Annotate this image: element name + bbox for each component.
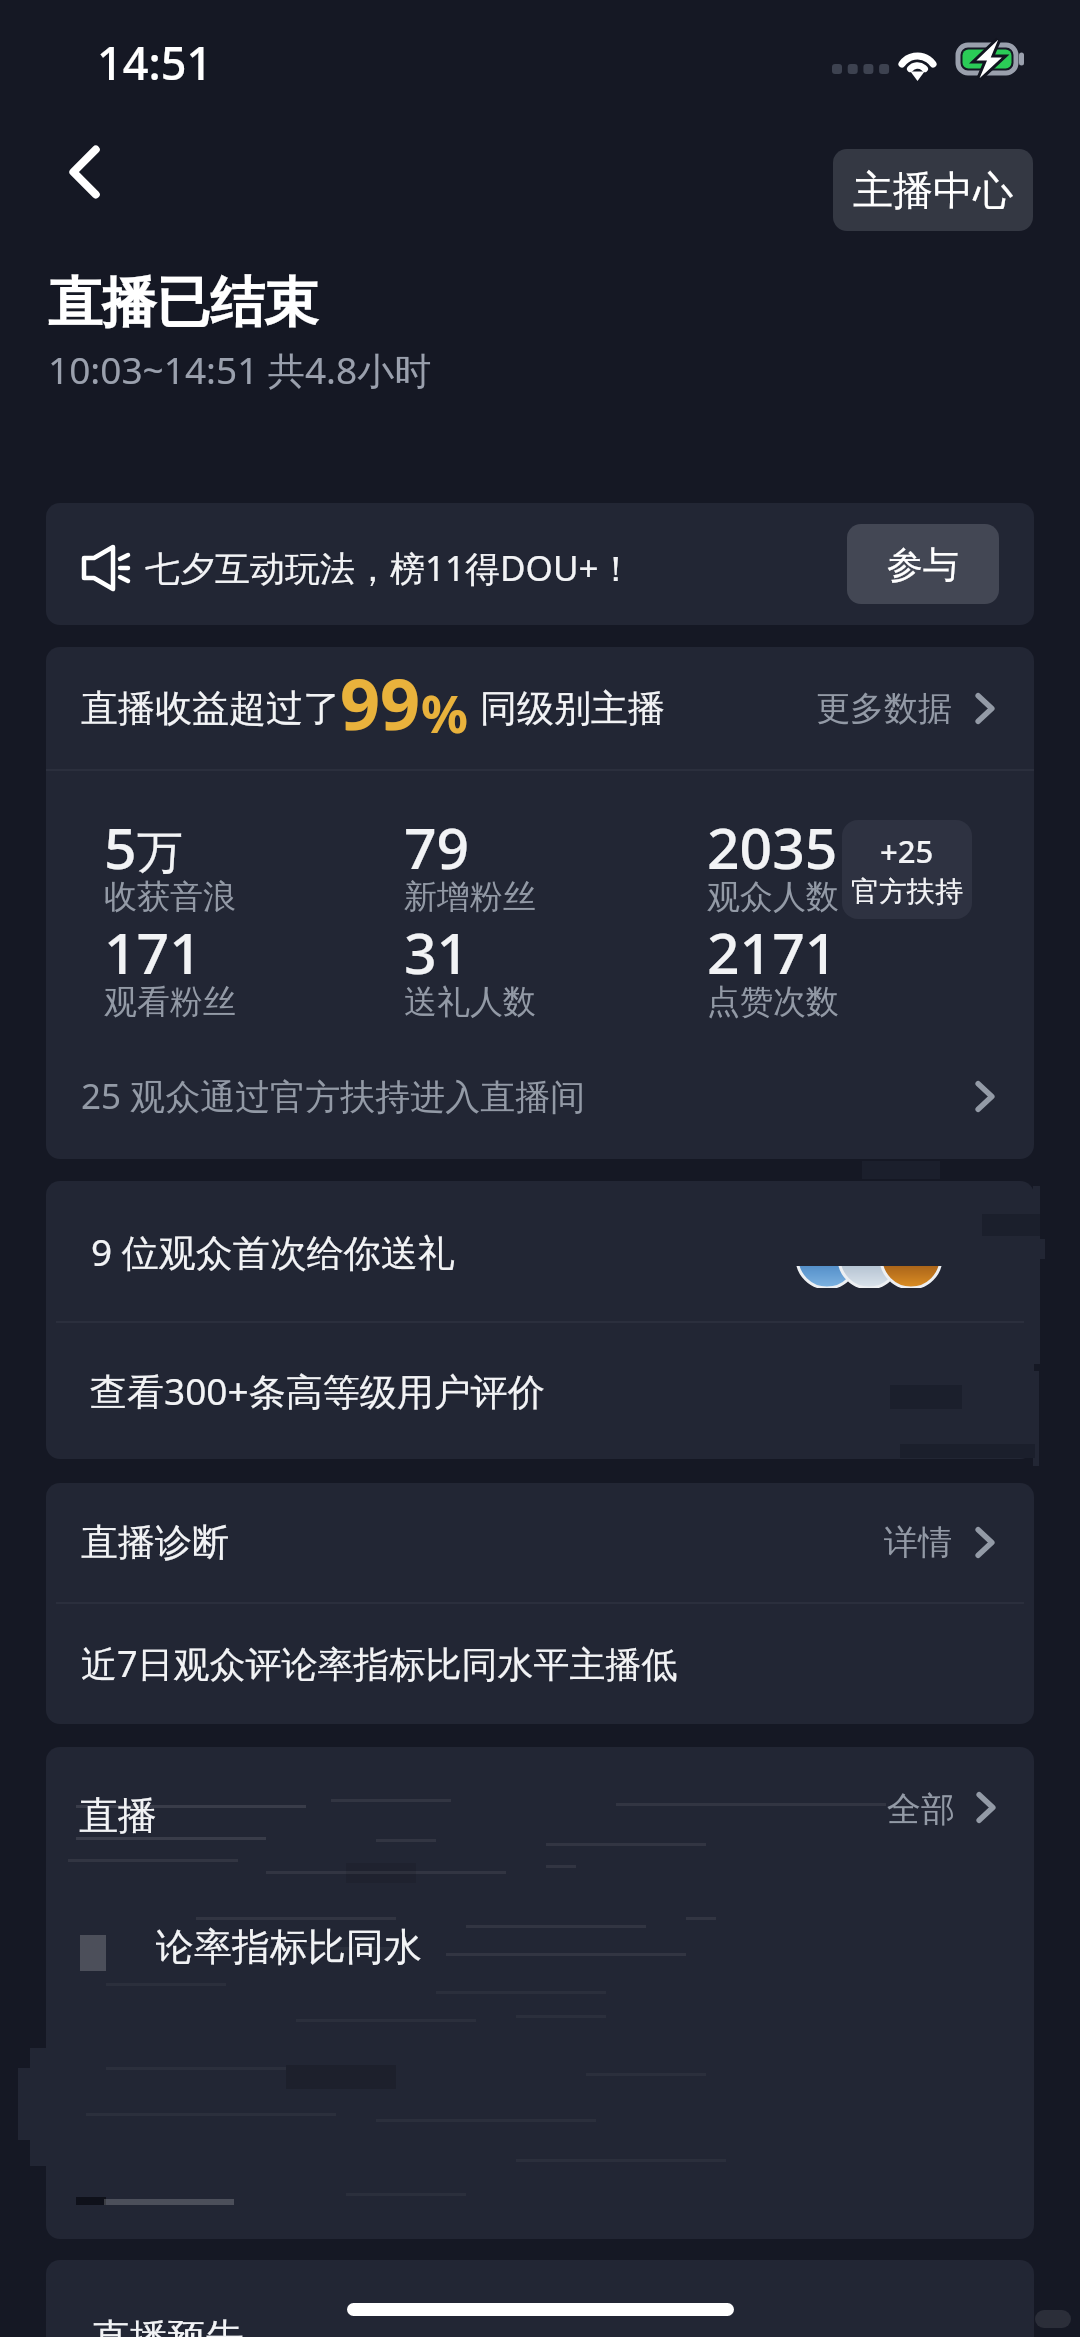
staticText: 查看300+条高等级用户评价 xyxy=(90,1365,545,1416)
button[interactable]: 主播中心 xyxy=(833,149,1033,231)
staticText: 参与 xyxy=(887,542,959,587)
staticText: 新增粉丝 xyxy=(404,876,536,918)
staticText: 主播中心 xyxy=(853,165,1013,215)
button[interactable]: 直播收益超过了 xyxy=(46,647,1034,769)
staticText: 2171 xyxy=(707,913,838,991)
button[interactable]: +25 xyxy=(842,820,972,919)
button[interactable]: Back xyxy=(42,130,126,214)
staticText: 观众人数 xyxy=(707,876,839,918)
staticText: 论率指标比同水 xyxy=(156,1923,422,1971)
staticText: 10:03~14:51 共4.8小时 xyxy=(48,344,432,395)
button[interactable]: 查看300+条高等级用户评价 xyxy=(46,1322,1034,1459)
staticText: 171 xyxy=(104,913,202,991)
staticText: 详情 xyxy=(884,1521,952,1564)
staticText: 25 观众通过官方扶持进入直播间 xyxy=(81,1072,586,1120)
staticText: 5 xyxy=(104,808,137,886)
staticText: +25 xyxy=(880,830,934,872)
staticText: 近7日观众评论率指标比同水平主播低 xyxy=(81,1639,678,1688)
staticText: 31 xyxy=(404,913,470,991)
staticText: 直播 xyxy=(79,1791,157,1840)
button[interactable]: 直播诊断 xyxy=(46,1483,1034,1602)
button[interactable]: 近7日观众评论率指标比同水平主播低 xyxy=(46,1603,1034,1724)
staticText: 官方扶持 xyxy=(851,874,963,909)
staticText: % xyxy=(421,677,468,748)
staticText: 直播预告 xyxy=(92,2314,244,2337)
staticText: 2035 xyxy=(707,808,838,886)
button[interactable]: 直播预告 xyxy=(46,2260,1034,2337)
staticText: 万 xyxy=(137,824,183,882)
staticText: 收获音浪 xyxy=(104,876,236,918)
staticText: 七夕互动玩法，榜11得DOU+！ xyxy=(145,544,634,592)
staticText: 同级别主播 xyxy=(480,685,665,732)
staticText: 14:51 xyxy=(97,32,213,93)
button[interactable]: 参与 xyxy=(847,524,999,604)
staticText: 观看粉丝 xyxy=(104,981,236,1023)
staticText: 点赞次数 xyxy=(707,981,839,1023)
staticText: 直播已结束 xyxy=(48,269,318,337)
staticText: 直播收益超过了 xyxy=(81,685,340,732)
button[interactable]: 七夕互动玩法，榜11得DOU+！ xyxy=(46,503,1034,625)
button[interactable]: 直播 xyxy=(46,1747,1034,2239)
staticText: 99 xyxy=(340,655,421,750)
staticText: 直播诊断 xyxy=(81,1519,229,1566)
staticText: 更多数据 xyxy=(816,687,952,730)
staticText: 9 位观众首次给你送礼 xyxy=(91,1226,455,1277)
staticText: 送礼人数 xyxy=(404,981,536,1023)
staticText: 全部 xyxy=(887,1788,955,1831)
button[interactable]: 9 位观众首次给你送礼 xyxy=(46,1181,1034,1321)
staticText: 79 xyxy=(404,808,470,886)
button[interactable]: 25 观众通过官方扶持进入直播间 xyxy=(46,1046,1034,1146)
